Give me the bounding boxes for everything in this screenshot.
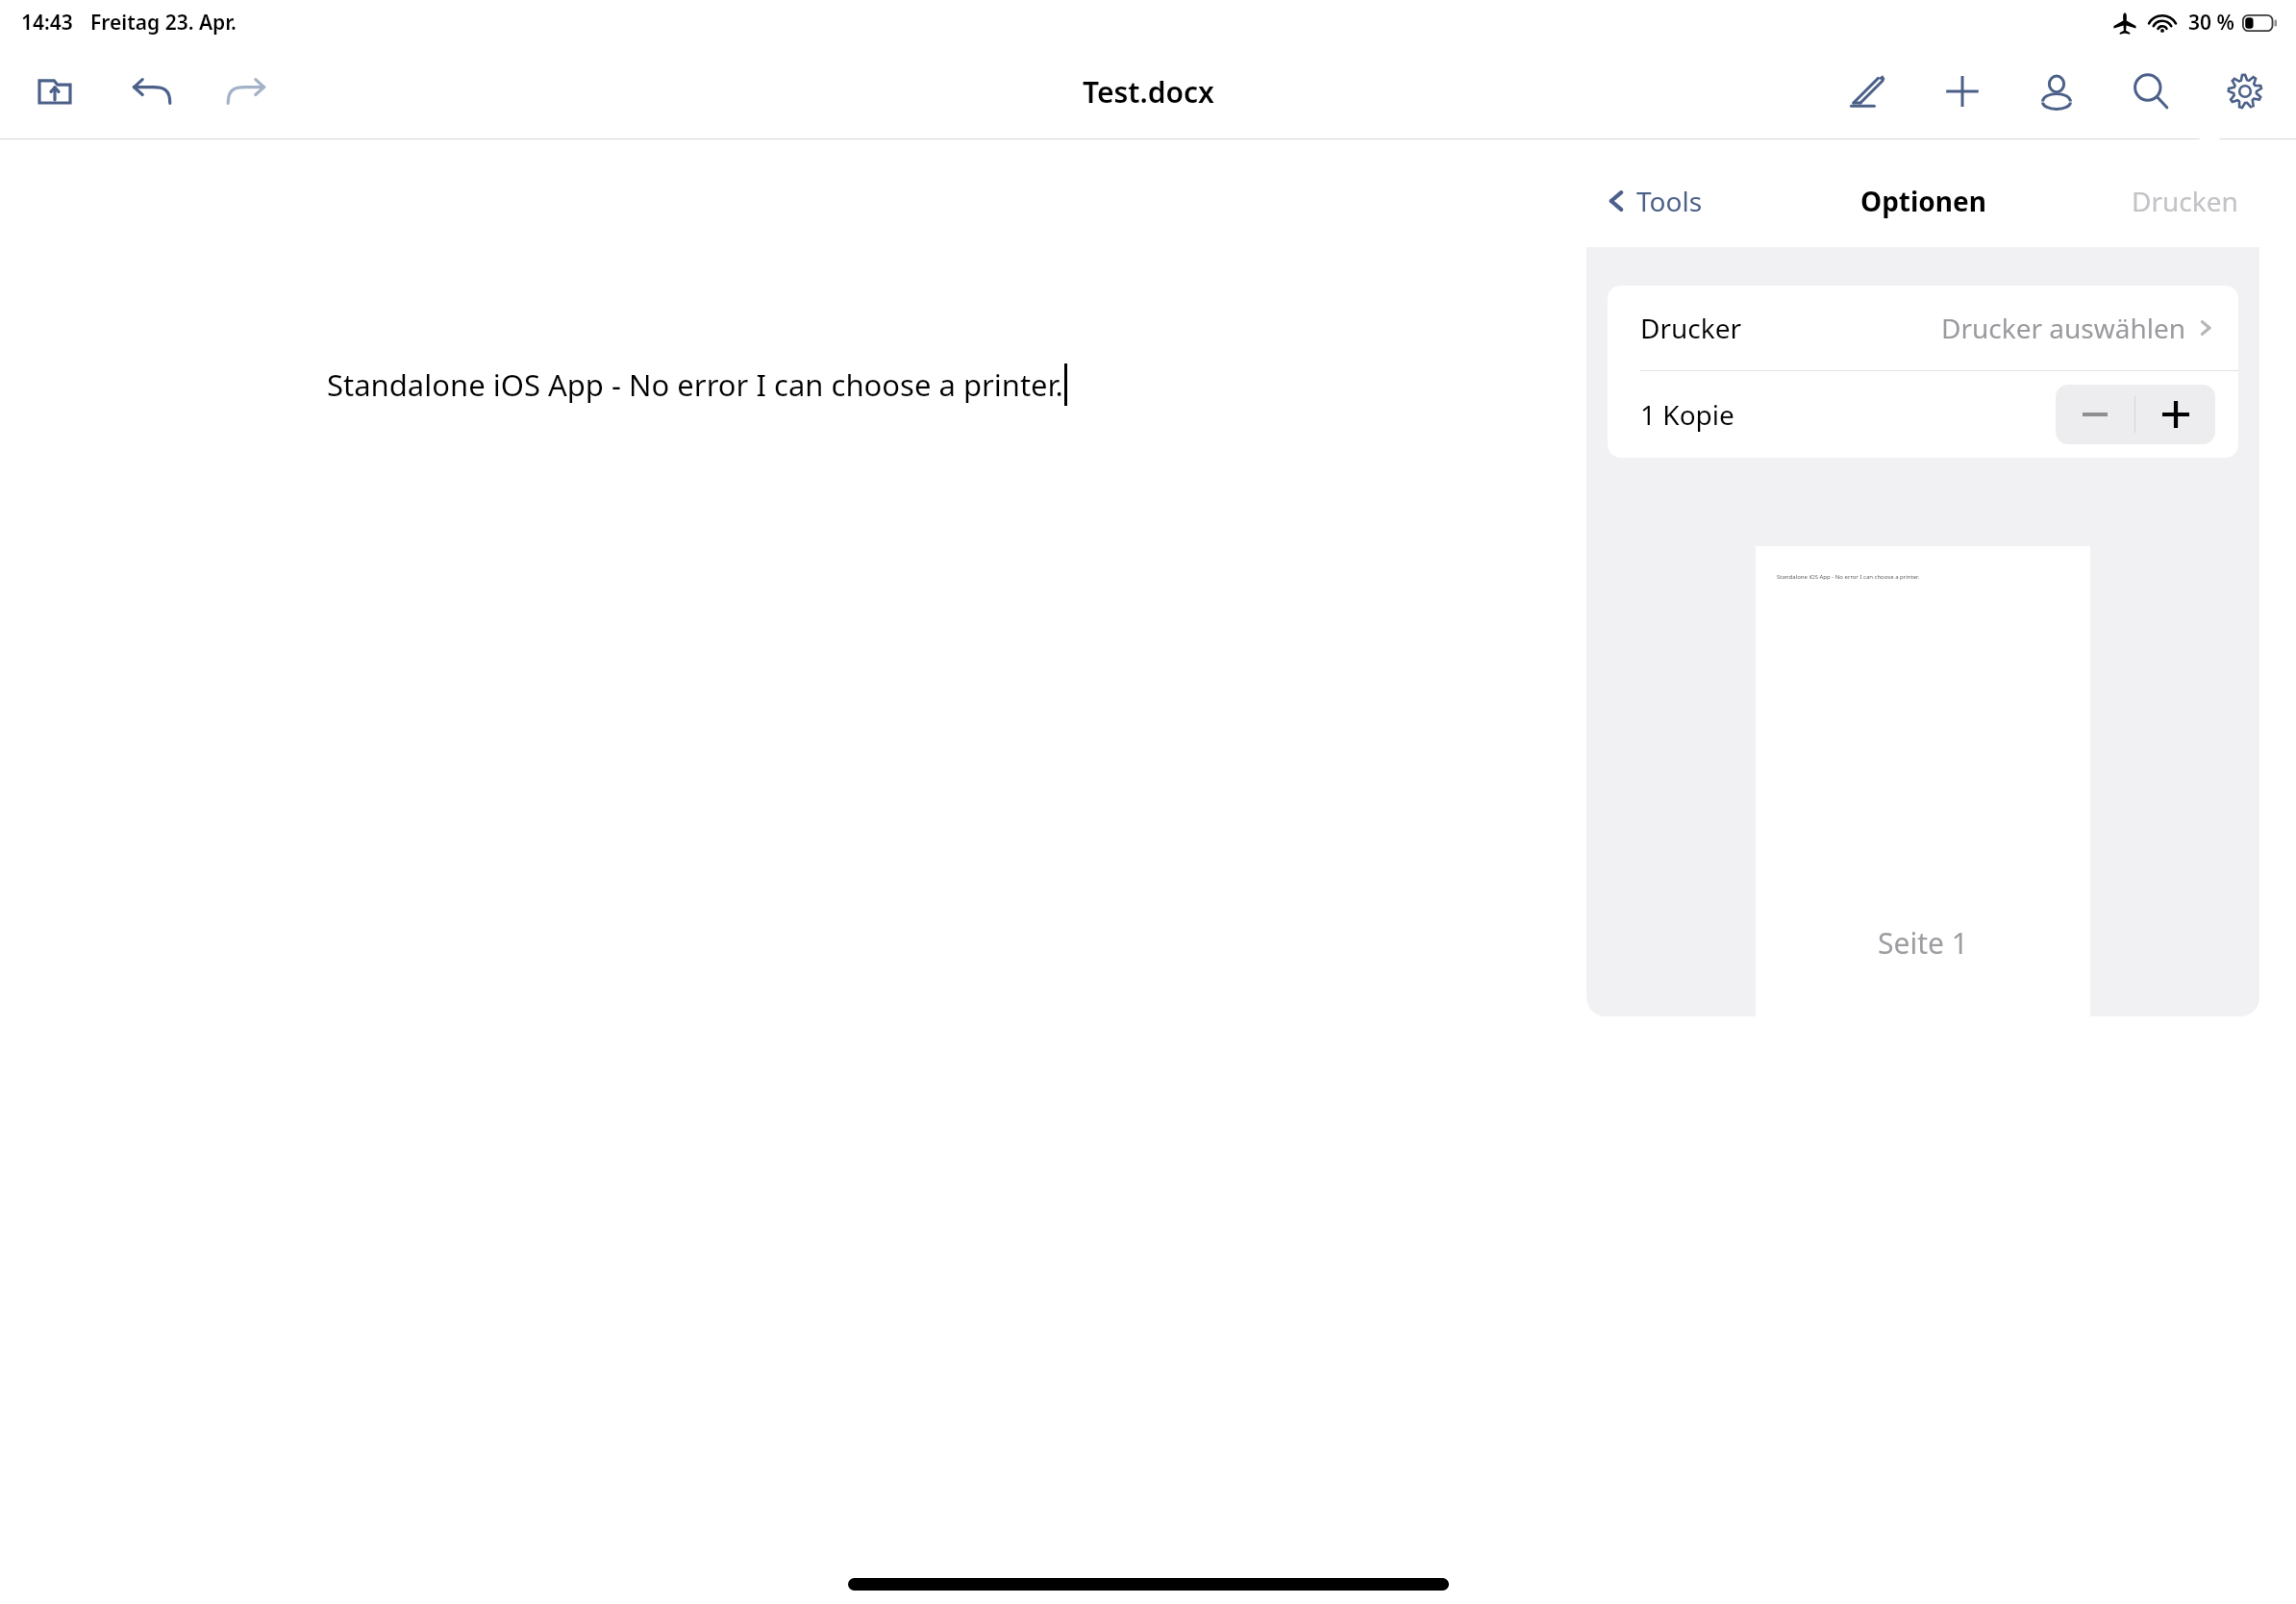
staticText: Freitag 23. Apr.	[90, 9, 237, 37]
staticText: Test.docx	[1083, 72, 1214, 112]
button[interactable]: Drucken	[2132, 183, 2238, 219]
staticText: Tools	[1636, 183, 1703, 219]
staticText: Optionen	[1860, 183, 1986, 219]
staticText: Drucken	[2132, 183, 2238, 219]
staticText: 14:43	[21, 9, 73, 37]
button[interactable]: Export	[29, 65, 81, 117]
staticText: Drucker	[1640, 310, 1742, 346]
button[interactable]: Tools	[1604, 183, 1703, 219]
button[interactable]: Redo	[221, 65, 273, 117]
button[interactable]: Drucker	[1608, 286, 2238, 370]
staticText: Standalone iOS App - No error I can choo…	[327, 364, 1063, 405]
button[interactable]: Insert	[1936, 65, 1988, 117]
button[interactable]: Decrease copies	[2056, 385, 2134, 444]
button[interactable]: Account	[2031, 65, 2083, 117]
button[interactable]: Standalone iOS App - No error I can choo…	[1756, 546, 2090, 1016]
staticText: Seite 1	[1878, 923, 1968, 963]
button[interactable]: Undo	[125, 65, 177, 117]
staticText: 30 %	[2188, 9, 2234, 37]
staticText: 1 Kopie	[1640, 396, 1734, 433]
button[interactable]: Search	[2125, 65, 2177, 117]
button[interactable]: Edit	[1842, 65, 1894, 117]
staticText: Standalone iOS App - No error I can choo…	[1777, 573, 1920, 581]
button[interactable]: Increase copies	[2135, 385, 2215, 444]
staticText: Drucker auswählen	[1941, 310, 2186, 346]
button[interactable]: Settings	[2219, 65, 2271, 117]
